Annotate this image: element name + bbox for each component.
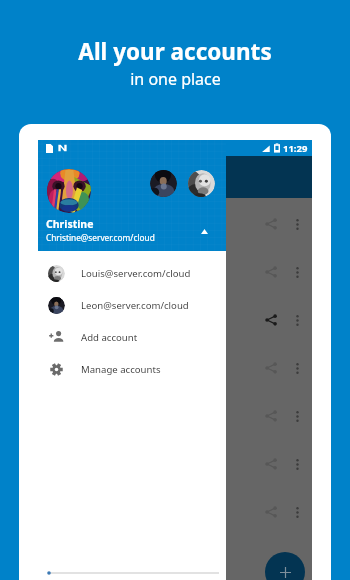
button[interactable]: More options xyxy=(287,454,307,474)
button[interactable]: More options xyxy=(287,214,307,234)
button[interactable]: More options xyxy=(287,310,307,330)
staticText: Christine xyxy=(46,217,94,231)
button[interactable]: Current account avatar xyxy=(47,169,91,213)
button[interactable]: Add xyxy=(265,552,305,580)
button[interactable]: Leon@server.com/cloud xyxy=(38,289,226,321)
staticText: Leon@server.com/cloud xyxy=(81,299,189,312)
button[interactable]: More options xyxy=(287,502,307,522)
staticText: All your accounts xyxy=(78,36,272,67)
staticText: Christine@server.com/cloud xyxy=(46,232,155,243)
button[interactable]: Share xyxy=(259,212,283,236)
button[interactable]: Account Leon xyxy=(188,170,215,197)
button[interactable]: Expand accounts xyxy=(197,224,211,238)
button[interactable]: Add account xyxy=(38,321,226,353)
button[interactable]: More options xyxy=(287,262,307,282)
staticText: in one place xyxy=(130,68,221,90)
button[interactable]: Share xyxy=(259,500,283,524)
button[interactable]: Manage accounts xyxy=(38,353,226,385)
staticText: Louis@server.com/cloud xyxy=(81,267,191,280)
button[interactable]: More options xyxy=(287,406,307,426)
staticText: 11:29 xyxy=(283,142,308,155)
button[interactable]: Share xyxy=(259,404,283,428)
button[interactable]: Louis@server.com/cloud xyxy=(38,257,226,289)
button[interactable]: Share xyxy=(259,356,283,380)
button[interactable]: Share xyxy=(259,308,283,332)
button[interactable]: Share xyxy=(259,260,283,284)
button[interactable]: Account Louis xyxy=(150,170,177,197)
staticText: Manage accounts xyxy=(81,363,161,376)
button[interactable]: Share xyxy=(259,452,283,476)
staticText: Add account xyxy=(81,331,138,344)
button[interactable]: More options xyxy=(287,358,307,378)
